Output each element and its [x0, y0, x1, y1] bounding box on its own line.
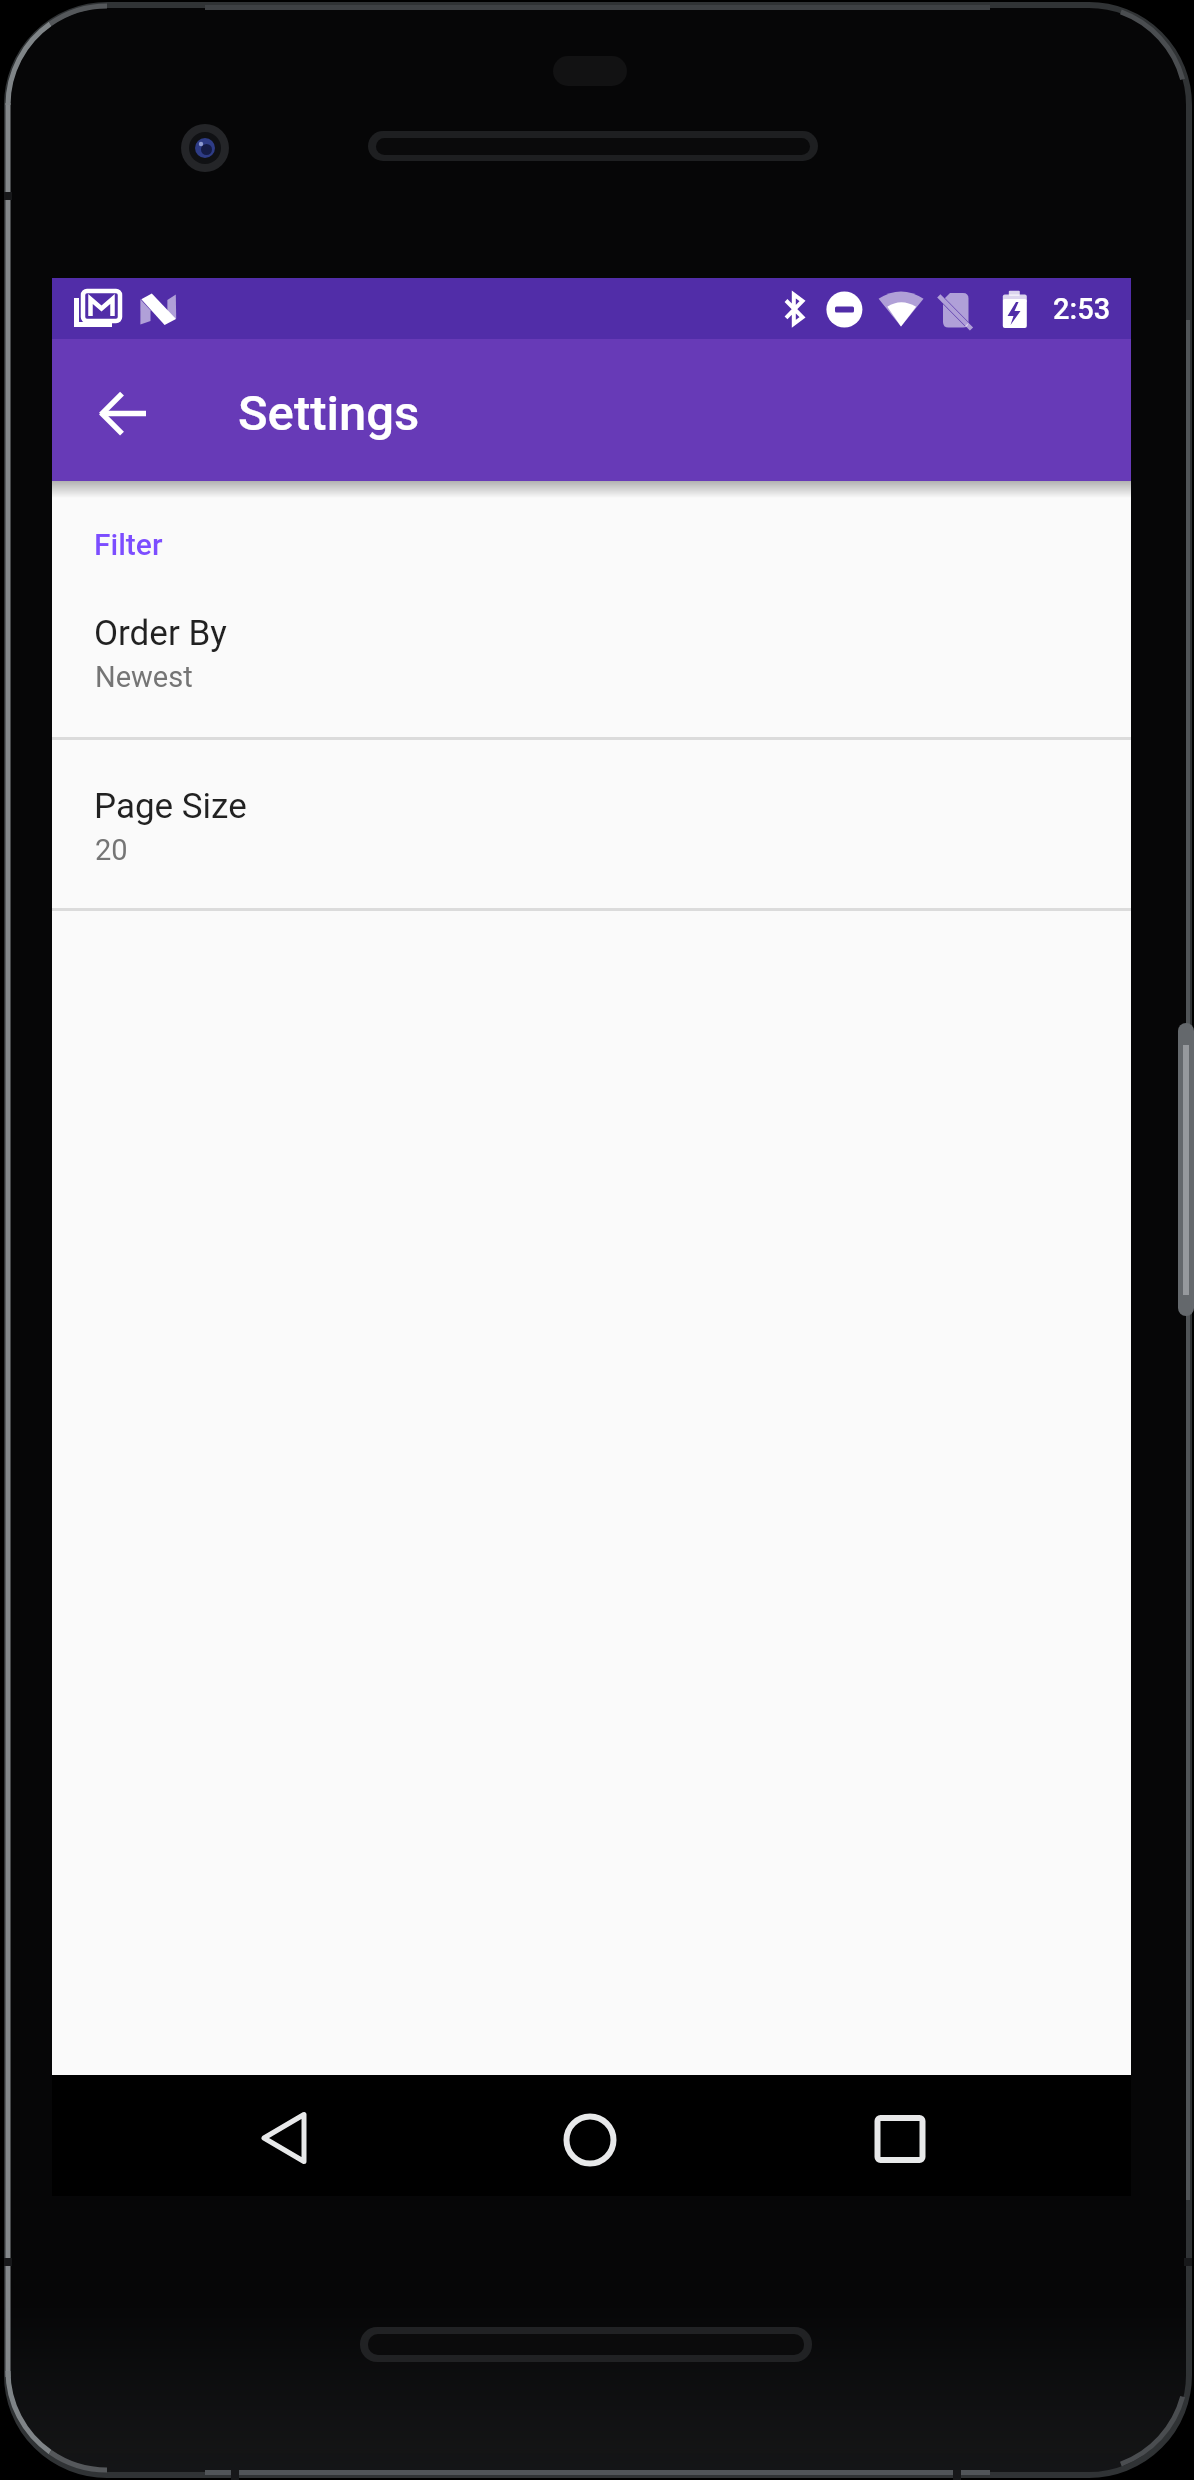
staticText: 2:53	[1053, 292, 1111, 326]
staticText: Filter	[94, 527, 163, 562]
button[interactable]	[542, 2092, 638, 2188]
button[interactable]: Page Size	[52, 736, 1131, 913]
button[interactable]	[236, 2090, 332, 2186]
staticText: 20	[95, 833, 128, 867]
staticText: Newest	[95, 660, 193, 694]
button[interactable]: Order By	[52, 560, 1131, 734]
button[interactable]	[852, 2091, 948, 2187]
staticText: Page Size	[94, 786, 247, 827]
button[interactable]	[76, 365, 172, 461]
staticText: Order By	[94, 613, 227, 654]
staticText: Settings	[238, 385, 420, 442]
